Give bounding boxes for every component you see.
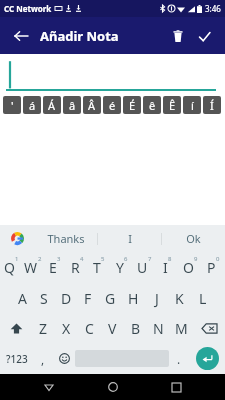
staticText: T xyxy=(93,258,101,277)
staticText: O xyxy=(183,258,194,277)
button[interactable]: Enter xyxy=(189,343,225,374)
staticText: Á xyxy=(48,98,56,113)
staticText: D xyxy=(61,289,72,308)
staticText: 2 xyxy=(38,255,42,263)
staticText: M xyxy=(175,319,188,338)
staticText: 8 xyxy=(168,255,172,263)
button[interactable]: í xyxy=(183,96,201,114)
button[interactable]: U xyxy=(133,252,156,283)
staticText: N xyxy=(153,319,164,338)
staticText: A xyxy=(18,289,27,308)
button[interactable]: G xyxy=(99,283,122,314)
staticText: é xyxy=(109,98,116,113)
staticText: Thanks xyxy=(47,231,85,246)
button[interactable]: M xyxy=(170,314,193,343)
staticText: C xyxy=(85,319,94,338)
button[interactable]: Ok xyxy=(162,225,225,252)
button[interactable]: é xyxy=(103,96,121,114)
staticText: F xyxy=(84,289,92,308)
button[interactable]: Delete xyxy=(165,23,191,49)
staticText: J xyxy=(155,289,159,308)
button[interactable]: ' xyxy=(3,96,21,114)
staticText: Ê xyxy=(169,98,176,113)
button[interactable] xyxy=(0,54,225,94)
button[interactable]: â xyxy=(63,96,81,114)
staticText: 3:46 xyxy=(205,3,221,14)
button[interactable]: I xyxy=(98,225,161,252)
button[interactable]: Back xyxy=(8,23,34,49)
button[interactable]: F xyxy=(77,283,99,314)
button[interactable]: A xyxy=(11,283,33,314)
button[interactable]: É xyxy=(123,96,141,114)
button[interactable]: J xyxy=(145,283,168,314)
staticText: I xyxy=(128,231,132,246)
button[interactable]: L xyxy=(191,283,214,314)
staticText: X xyxy=(62,319,71,338)
staticText: Añadir Nota xyxy=(40,27,119,45)
button[interactable]: P xyxy=(202,252,225,283)
button[interactable]: I xyxy=(156,252,179,283)
button[interactable]: Shift xyxy=(0,314,32,343)
button[interactable]: S xyxy=(33,283,55,314)
button[interactable]: B xyxy=(124,314,147,343)
staticText: H xyxy=(128,289,139,308)
button[interactable]: D xyxy=(55,283,77,314)
button[interactable]: Save xyxy=(191,23,217,49)
staticText: K xyxy=(175,289,184,308)
button[interactable]: Í xyxy=(203,96,221,114)
button[interactable]: Ê xyxy=(163,96,181,114)
button[interactable]: Y xyxy=(110,252,133,283)
button[interactable]: W xyxy=(22,252,44,283)
staticText: â xyxy=(69,98,76,113)
button[interactable]: Emoji xyxy=(53,343,75,374)
staticText: 7 xyxy=(148,255,152,263)
staticText: 0 xyxy=(216,255,220,263)
staticText: E xyxy=(49,258,57,277)
staticText: G xyxy=(105,289,116,308)
staticText: L xyxy=(199,289,207,308)
button[interactable]: Back xyxy=(34,374,64,400)
button[interactable]: Á xyxy=(43,96,61,114)
button[interactable]: Home xyxy=(98,374,128,400)
button[interactable]: Backspace xyxy=(193,314,225,343)
button[interactable]: T xyxy=(88,252,110,283)
button[interactable]: Thanks xyxy=(34,225,97,252)
staticText: W xyxy=(24,258,38,277)
staticText: U xyxy=(137,258,148,277)
button[interactable]: á xyxy=(23,96,41,114)
staticText: P xyxy=(207,258,216,277)
staticText: 1 xyxy=(15,255,19,263)
button[interactable]: . xyxy=(169,343,189,374)
button[interactable]: X xyxy=(55,314,78,343)
staticText: S xyxy=(40,289,48,308)
button[interactable]: E xyxy=(44,252,66,283)
button[interactable]: O xyxy=(179,252,202,283)
staticText: 5 xyxy=(101,255,105,263)
staticText: Ok xyxy=(186,231,201,246)
button[interactable]: ê xyxy=(143,96,161,114)
button[interactable]: V xyxy=(101,314,124,343)
button[interactable]: N xyxy=(147,314,170,343)
staticText: 6 xyxy=(124,255,128,263)
button[interactable]: , xyxy=(33,343,53,374)
button[interactable]: Q xyxy=(0,252,22,283)
button[interactable]: Z xyxy=(32,314,55,343)
staticText: Q xyxy=(4,258,15,277)
staticText: V xyxy=(108,319,117,338)
button[interactable]: K xyxy=(168,283,191,314)
staticText: Í xyxy=(210,98,214,113)
staticText: ' xyxy=(11,98,14,113)
button[interactable]: R xyxy=(66,252,88,283)
staticText: 4 xyxy=(80,255,84,263)
staticText: , xyxy=(41,351,45,367)
staticText: CC Network xyxy=(4,3,52,14)
button[interactable]: Google xyxy=(0,225,34,252)
button[interactable]: C xyxy=(78,314,101,343)
button[interactable]: ?123 xyxy=(0,343,33,374)
staticText: Z xyxy=(39,319,48,338)
staticText: Â xyxy=(88,98,96,113)
button[interactable]: Â xyxy=(83,96,101,114)
button[interactable]: Recents xyxy=(161,374,191,400)
button[interactable]: H xyxy=(122,283,145,314)
